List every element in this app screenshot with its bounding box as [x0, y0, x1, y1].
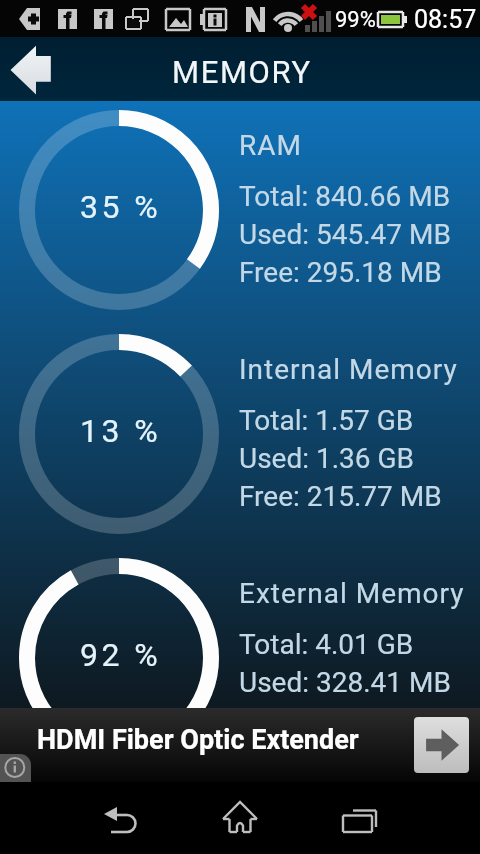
staticText: Free: 215.77 MB: [239, 480, 442, 518]
button[interactable]: 92 %: [0, 548, 480, 772]
staticText: MEMORY: [172, 54, 312, 90]
button[interactable]: Back: [0, 37, 62, 101]
staticText: Total: 840.66 MB: [239, 180, 451, 218]
staticText: 99%: [335, 7, 376, 33]
staticText: 08:57: [414, 5, 477, 34]
staticText: Used: 1.36 GB: [239, 442, 415, 480]
staticText: 35 %: [80, 188, 161, 226]
staticText: Free: 3.69 GB: [239, 704, 405, 742]
staticText: HDMI Fiber Optic Extender: [37, 724, 359, 756]
staticText: RAM: [239, 129, 302, 162]
staticText: Total: 4.01 GB: [239, 628, 414, 666]
button[interactable]: HDMI Fiber Optic Extender: [0, 708, 480, 782]
button[interactable]: Recent apps: [328, 794, 392, 842]
staticText: External Memory: [239, 577, 465, 610]
staticText: Used: 328.41 MB: [239, 666, 451, 704]
button[interactable]: Back: [88, 794, 152, 842]
staticText: Total: 1.57 GB: [239, 404, 414, 442]
button[interactable]: 35 %: [0, 100, 480, 324]
staticText: 13 %: [80, 412, 161, 450]
button[interactable]: Home: [208, 794, 272, 842]
staticText: Used: 545.47 MB: [239, 218, 451, 256]
staticText: Internal Memory: [239, 353, 458, 386]
staticText: Free: 295.18 MB: [239, 256, 442, 294]
staticText: 92 %: [80, 636, 161, 674]
button[interactable]: Ad info: [0, 754, 31, 796]
button[interactable]: Open advertisement: [414, 717, 469, 773]
button[interactable]: 13 %: [0, 324, 480, 548]
